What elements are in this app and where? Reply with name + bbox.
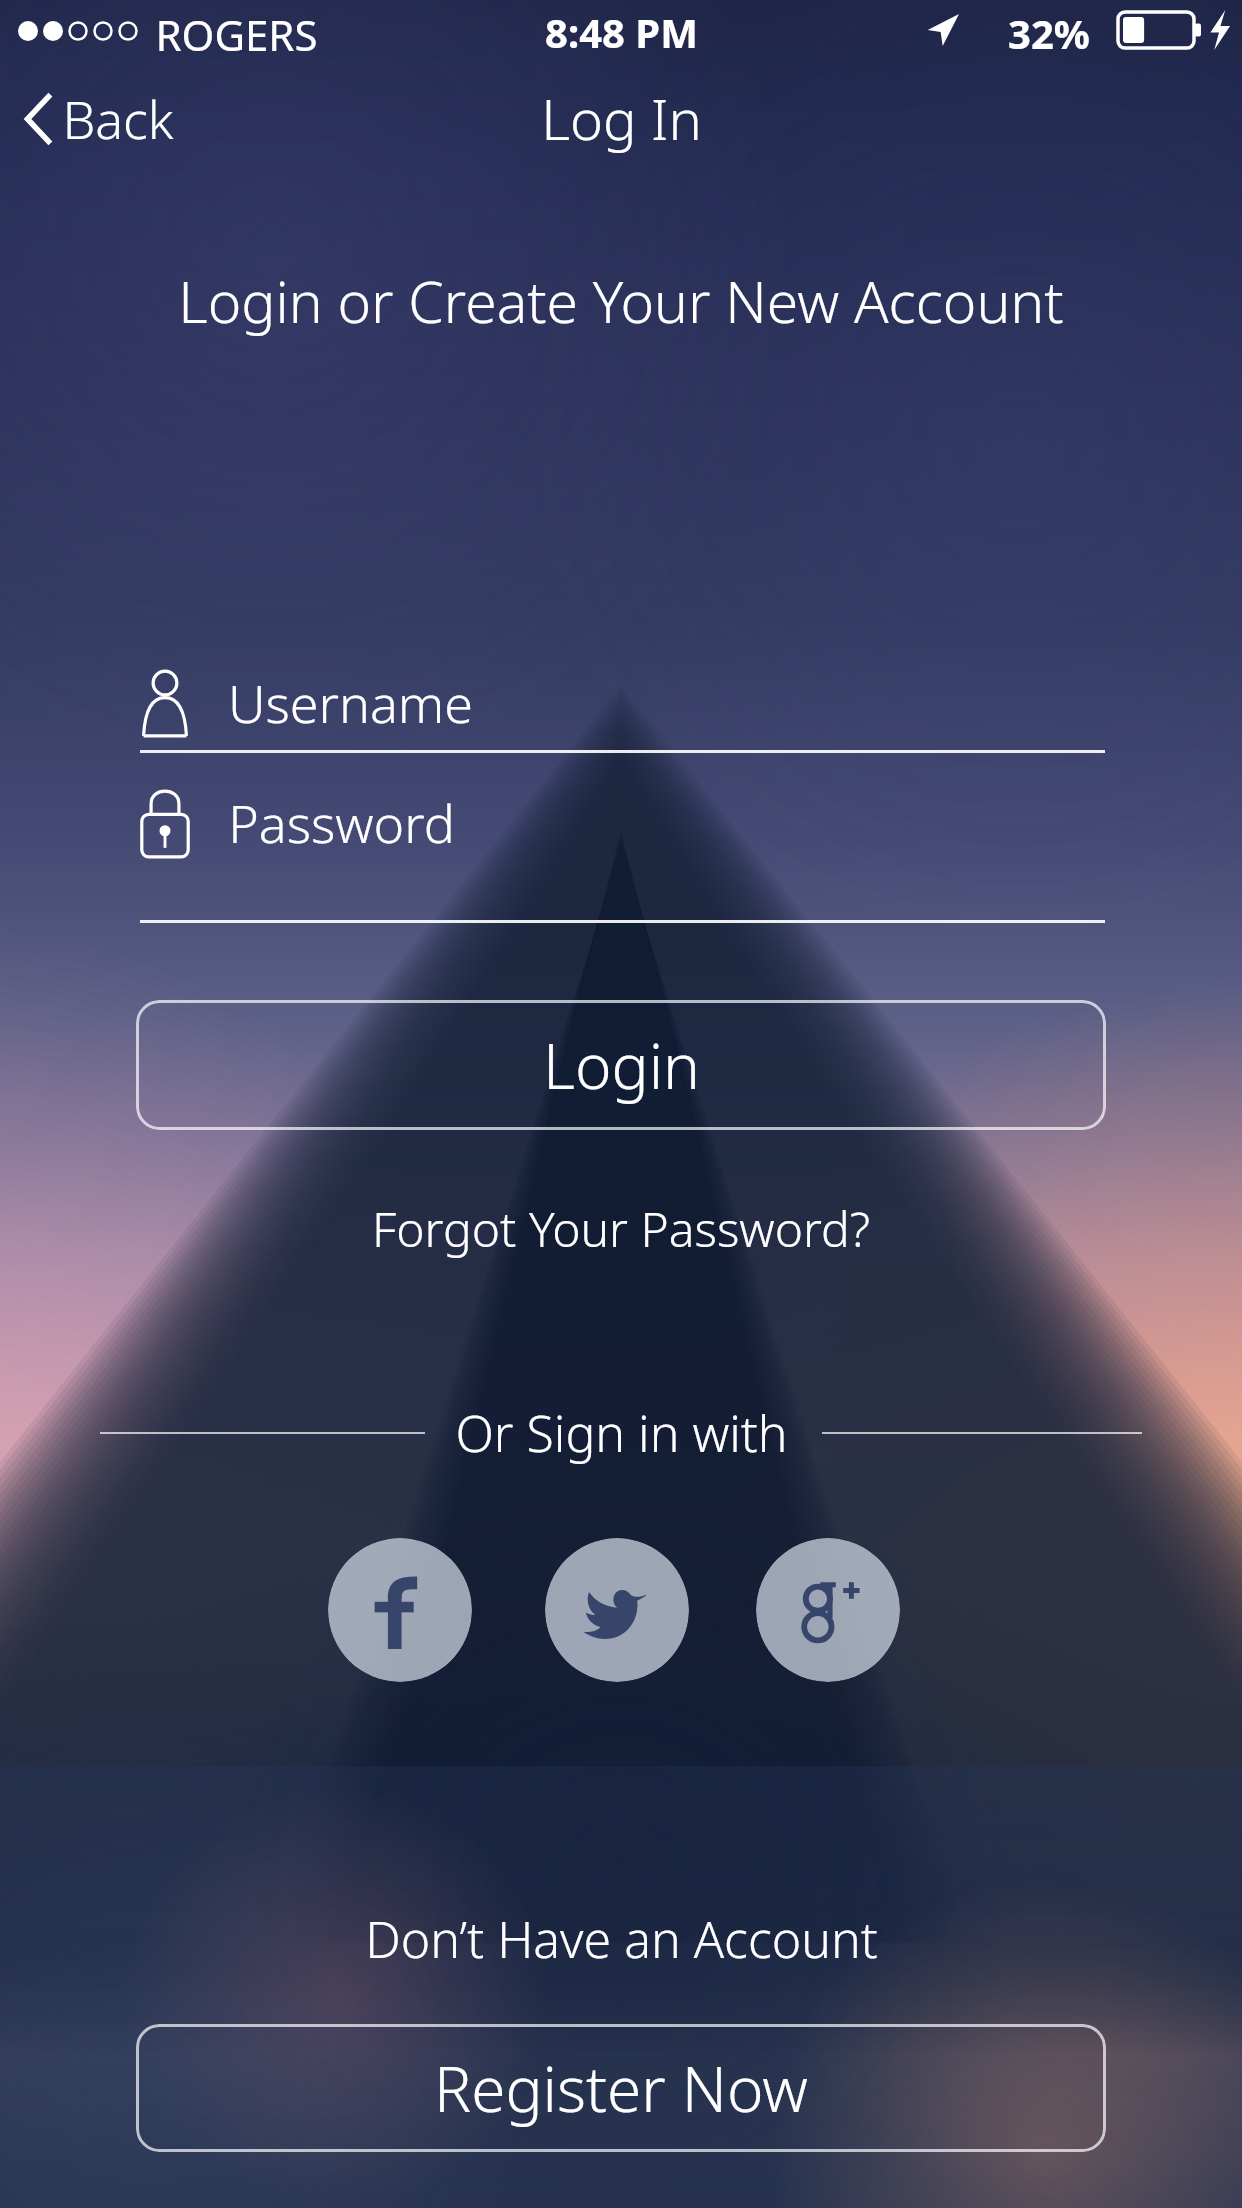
button[interactable]: Forgot Your Password? bbox=[271, 1188, 971, 1268]
staticText: Forgot Your Password? bbox=[372, 1196, 870, 1261]
button[interactable]: Sign in with Twitter bbox=[545, 1538, 689, 1682]
button[interactable]: Register Now bbox=[136, 2024, 1106, 2152]
staticText: Log In bbox=[541, 80, 702, 156]
button[interactable]: Sign in with Google Plus bbox=[756, 1538, 900, 1682]
button[interactable]: Password bbox=[136, 770, 1106, 874]
staticText: 32% bbox=[1008, 6, 1090, 60]
staticText: Login or Create Your New Account bbox=[178, 262, 1064, 340]
staticText: ROGERS bbox=[155, 6, 318, 63]
staticText: 8:48 PM bbox=[545, 5, 698, 59]
button[interactable]: Sign in with Facebook bbox=[328, 1538, 472, 1682]
staticText: Password bbox=[228, 787, 455, 858]
staticText: Login bbox=[543, 1023, 700, 1107]
button[interactable]: Username bbox=[136, 650, 1106, 754]
button[interactable]: Back bbox=[8, 78, 218, 158]
staticText: Or Sign in with bbox=[455, 1399, 788, 1467]
staticText: Register Now bbox=[434, 2046, 808, 2130]
staticText: Username bbox=[228, 667, 473, 738]
staticText: Back bbox=[62, 83, 174, 154]
button[interactable]: Login bbox=[136, 1000, 1106, 1130]
staticText: Don’t Have an Account bbox=[365, 1905, 878, 1973]
